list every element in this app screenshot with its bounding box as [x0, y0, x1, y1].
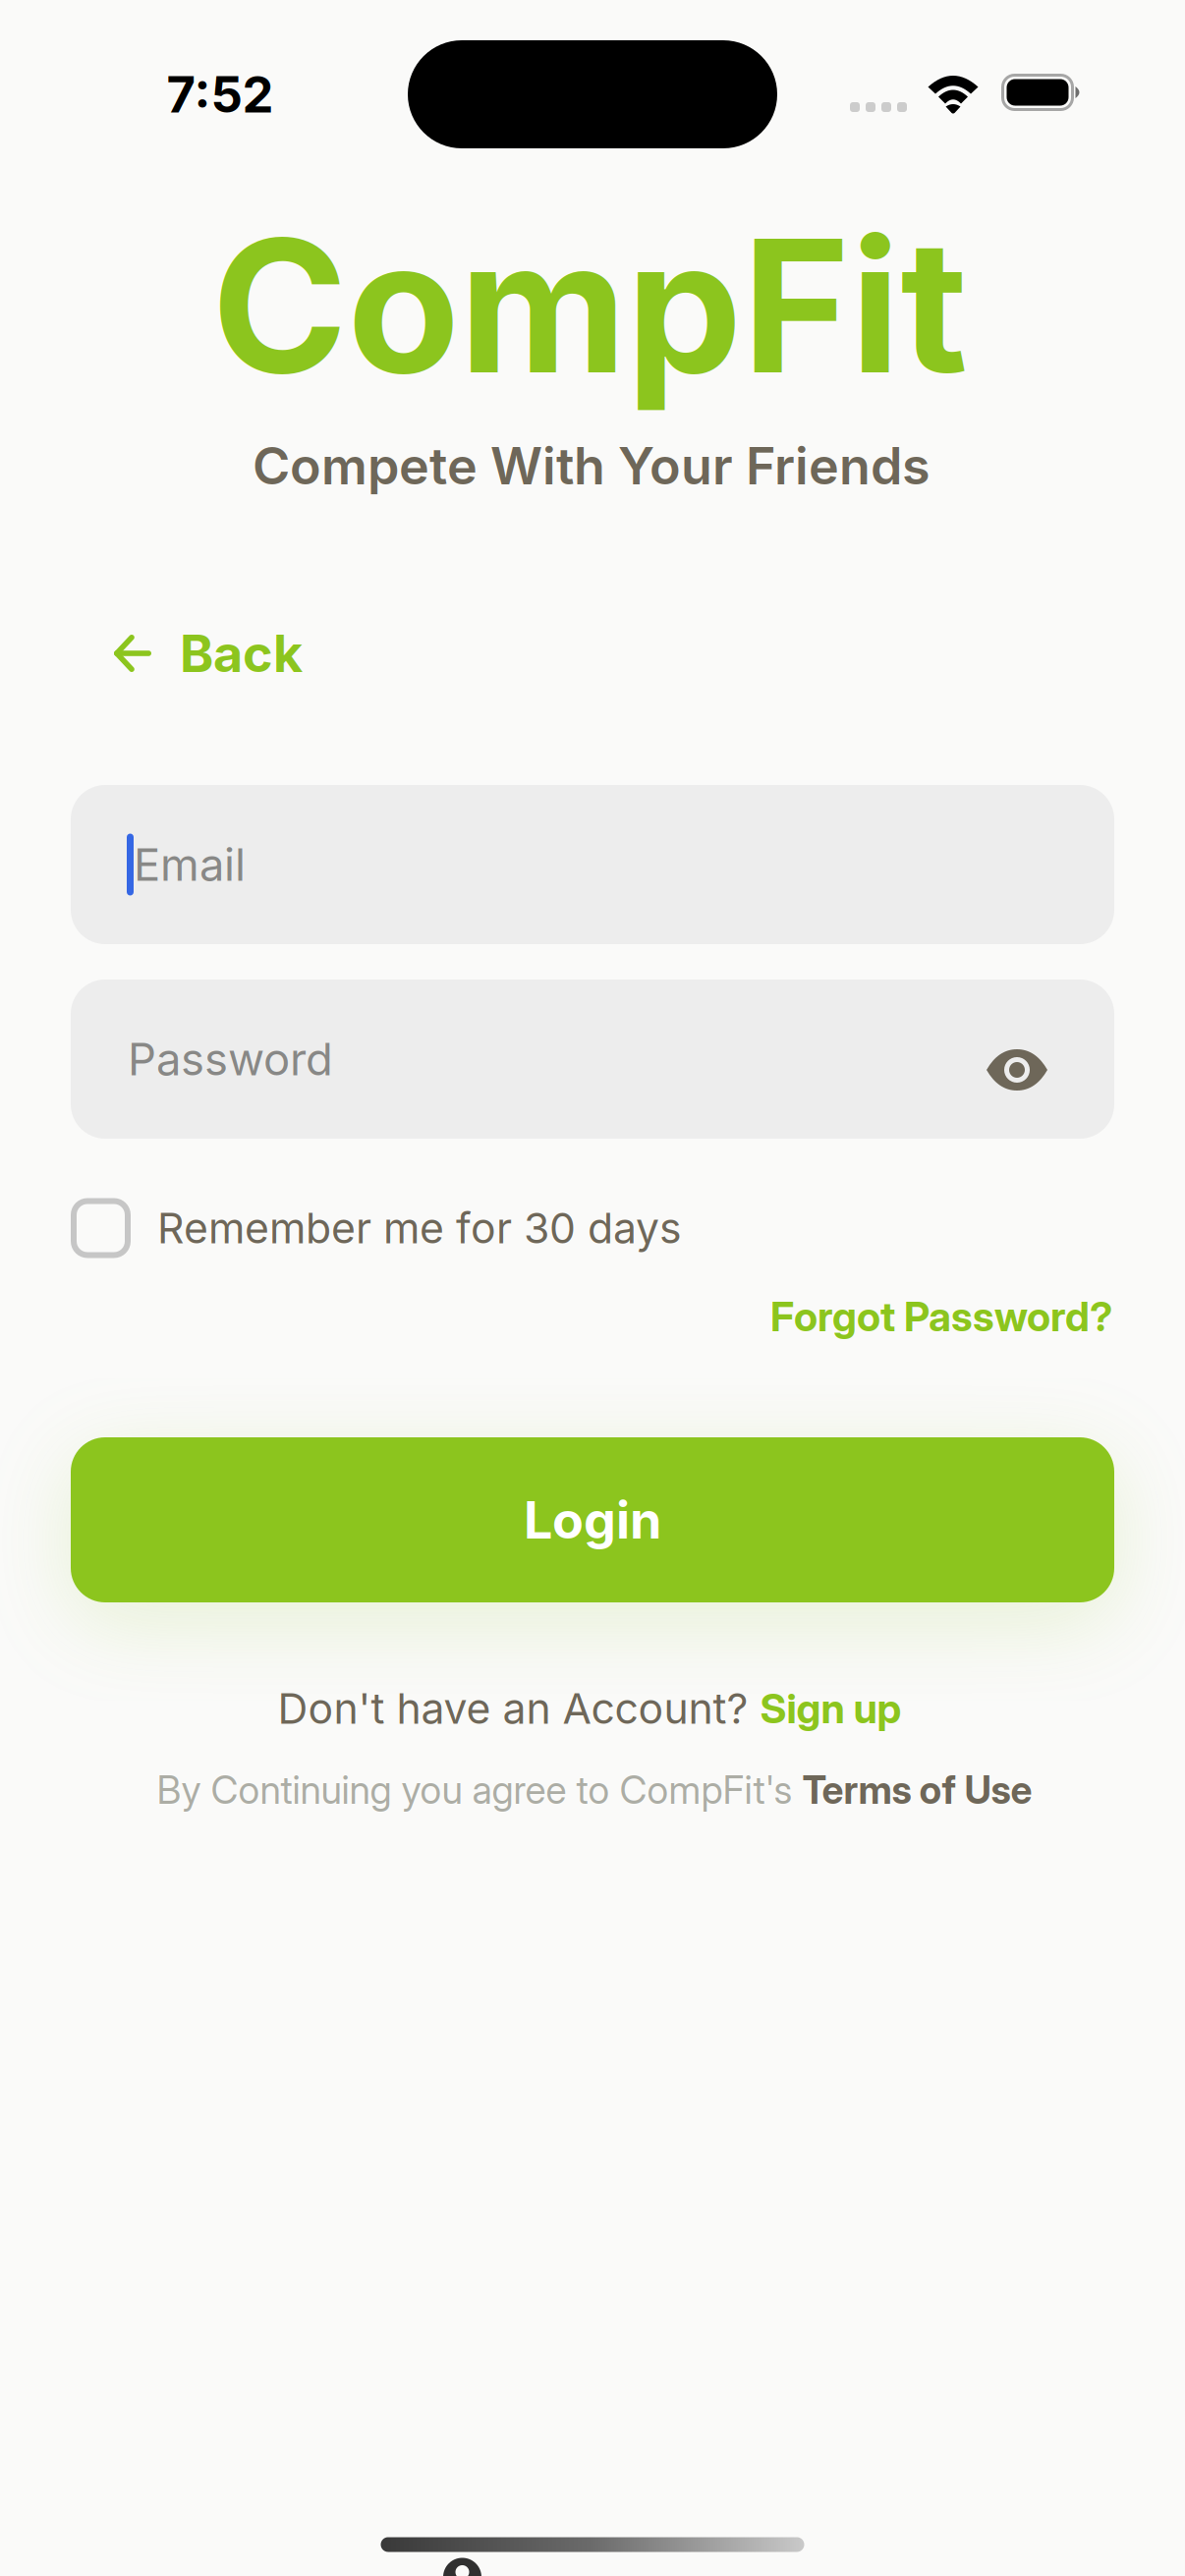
button[interactable]: Sign up — [760, 1684, 902, 1733]
staticText: Don't have an Account? — [278, 1683, 760, 1734]
staticText: Terms of Use — [802, 1767, 1032, 1813]
staticText: CompFit — [212, 195, 967, 417]
staticText: Back — [180, 622, 303, 684]
staticText: Sign up — [760, 1684, 902, 1733]
staticText: Login — [524, 1489, 661, 1551]
button[interactable]: Show password — [958, 1011, 1076, 1129]
button[interactable]: Email — [71, 785, 1114, 944]
button[interactable]: Terms of Use — [802, 1767, 1032, 1813]
staticText: Compete With Your Friends — [253, 435, 931, 497]
staticText: By Continuing you agree to CompFit's — [157, 1767, 802, 1813]
button[interactable]: Forgot Password? — [719, 1277, 1112, 1356]
staticText: Email — [134, 838, 246, 892]
staticText: Password — [128, 1032, 333, 1086]
button[interactable]: Back — [114, 609, 360, 698]
staticText: Forgot Password? — [770, 1292, 1112, 1341]
staticText: Remember me for 30 days — [157, 1203, 682, 1253]
button[interactable]: Remember me for 30 days — [71, 1181, 759, 1275]
button[interactable]: Password — [71, 980, 1114, 1139]
staticText: 7:52 — [167, 64, 274, 124]
button[interactable]: Login — [71, 1437, 1114, 1602]
